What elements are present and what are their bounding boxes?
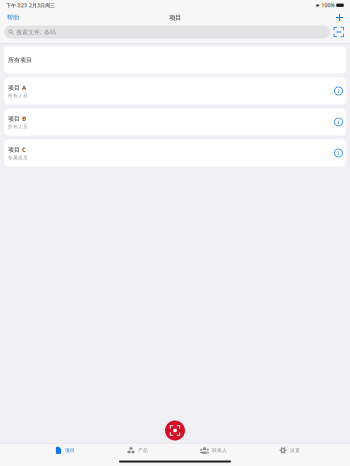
staticText: 专属成员 [8,155,28,161]
staticText: 项目 C [8,145,26,154]
button[interactable]: Scan barcode [164,420,185,441]
button[interactable]: 项目 A [4,77,346,104]
button[interactable]: 项目 [49,443,81,457]
staticText: 项目 [169,13,181,22]
staticText: 所有人员 [8,93,28,99]
staticText: 100% [321,2,334,9]
staticText: 设置 [290,447,300,453]
staticText: 项目 [65,447,75,453]
button[interactable]: 项目 B [4,108,346,135]
staticText: 所有项目 [8,56,32,64]
button[interactable]: Scan barcode [330,25,350,38]
staticText: 项目 A [8,83,26,92]
staticText: 项目 B [8,114,26,123]
staticText: 帮助 [7,14,19,21]
button[interactable]: 联系人 [194,443,233,457]
button[interactable]: 帮助 [3,11,23,23]
button[interactable]: 所有项目 [4,46,346,73]
staticText: 所有人员 [8,124,28,130]
staticText: 下午 3:23 2月3日周三 [6,2,55,9]
button[interactable]: 设置 [273,443,306,457]
staticText: 产品 [138,447,148,453]
staticText: 搜索文件, 条码 [16,28,56,36]
staticText: 联系人 [212,447,227,453]
button[interactable]: Add project [332,11,347,23]
button[interactable]: 项目 C [4,139,346,166]
button[interactable]: 产品 [121,443,154,457]
